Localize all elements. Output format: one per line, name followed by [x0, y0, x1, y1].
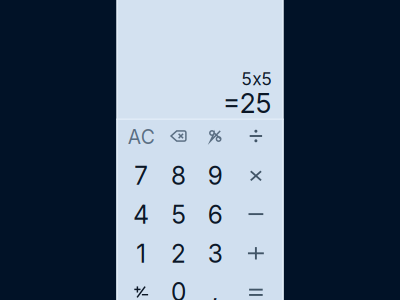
staticText: 1 [136, 239, 146, 269]
button[interactable]: 3 [196, 234, 234, 273]
button[interactable]: Divide [237, 117, 275, 155]
button[interactable]: 5 [160, 195, 197, 234]
button[interactable]: Delete [160, 117, 197, 155]
button[interactable]: Plus [237, 234, 275, 273]
staticText: =25 [223, 87, 272, 119]
button[interactable]: Multiply [237, 156, 275, 195]
staticText: 5x5 [241, 68, 272, 89]
staticText: 3 [208, 239, 223, 269]
button[interactable]: AC [122, 118, 160, 156]
staticText: 9 [208, 161, 223, 191]
button[interactable]: 9 [196, 156, 234, 195]
staticText: 8 [171, 161, 186, 191]
staticText: 6 [208, 200, 223, 230]
button[interactable]: 2 [160, 234, 197, 273]
button[interactable]: 4 [122, 195, 160, 234]
staticText: 2 [171, 239, 186, 269]
button[interactable]: , [196, 273, 234, 300]
button[interactable]: 1 [122, 234, 160, 273]
button[interactable]: 6 [196, 195, 234, 234]
staticText: 4 [133, 200, 149, 230]
staticText: 7 [134, 161, 148, 191]
button[interactable]: Percent [196, 117, 234, 155]
button[interactable]: 7 [122, 156, 160, 195]
button[interactable]: 8 [160, 156, 197, 195]
staticText: AC [128, 125, 155, 149]
button[interactable]: Toggle sign [122, 273, 160, 300]
button[interactable]: Equals [237, 273, 275, 300]
staticText: 5 [171, 200, 185, 230]
staticText: 0 [171, 277, 186, 300]
button[interactable]: Minus [237, 195, 275, 233]
button[interactable]: 0 [160, 273, 197, 300]
staticText: , [212, 277, 219, 300]
